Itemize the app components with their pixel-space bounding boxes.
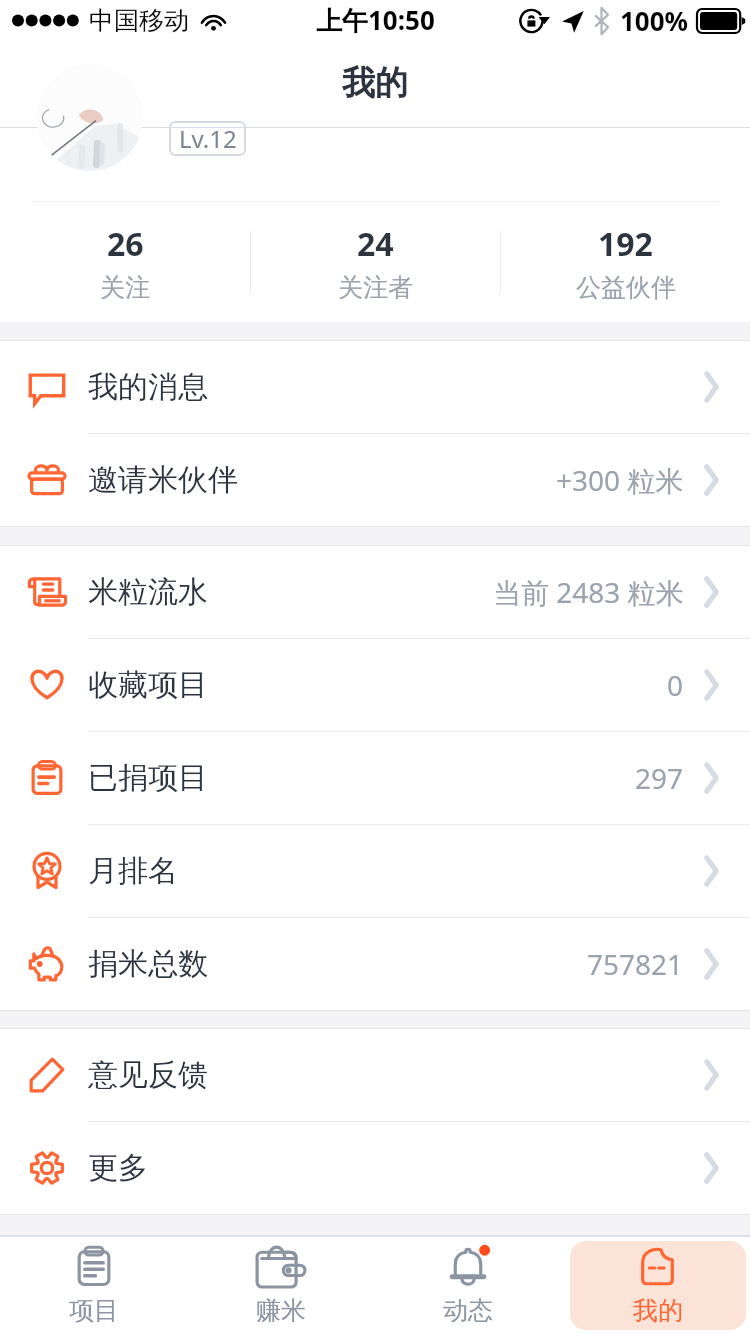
button[interactable]: 26 <box>0 217 250 307</box>
staticText: 收藏项目 <box>88 666 208 704</box>
button[interactable]: 192 <box>501 217 750 307</box>
staticText: 192 <box>598 222 653 266</box>
staticText: 项目 <box>69 1295 119 1326</box>
button[interactable]: 项目 <box>0 1241 187 1330</box>
staticText: 我的 <box>342 62 408 104</box>
staticText: 24 <box>357 222 394 266</box>
staticText: 100% <box>620 3 689 38</box>
staticText: 757821 <box>587 945 684 983</box>
staticText: 上午10:50 <box>316 2 435 38</box>
staticText: 我的消息 <box>88 368 208 406</box>
staticText: 意见反馈 <box>88 1056 208 1094</box>
button[interactable]: 更多 <box>0 1122 750 1214</box>
staticText: 赚米 <box>256 1295 306 1326</box>
button[interactable]: 赚米 <box>187 1241 374 1330</box>
staticText: 关注者 <box>338 272 413 303</box>
staticText: 当前 2483 粒米 <box>493 573 684 611</box>
staticText: Lv.12 <box>179 122 237 155</box>
staticText: 26 <box>107 222 144 266</box>
button[interactable]: 米粒流水 <box>0 546 750 638</box>
button[interactable]: 收藏项目 <box>0 639 750 731</box>
staticText: 更多 <box>88 1149 148 1187</box>
staticText: 公益伙伴 <box>576 272 676 303</box>
staticText: 米粒流水 <box>88 573 208 611</box>
staticText: 0 <box>667 666 684 704</box>
button[interactable]: 捐米总数 <box>0 918 750 1010</box>
button[interactable]: 邀请米伙伴 <box>0 434 750 526</box>
staticText: 我的 <box>633 1295 683 1326</box>
staticText: 捐米总数 <box>88 945 208 983</box>
button[interactable]: 月排名 <box>0 825 750 917</box>
staticText: +300 粒米 <box>556 461 684 499</box>
button[interactable]: 动态 <box>374 1241 562 1330</box>
button[interactable]: 我的消息 <box>0 341 750 433</box>
staticText: 中国移动 <box>89 5 189 36</box>
staticText: 邀请米伙伴 <box>88 461 238 499</box>
button[interactable]: 我的 <box>570 1241 746 1330</box>
staticText: 月排名 <box>88 852 178 890</box>
staticText: 已捐项目 <box>88 759 208 797</box>
staticText: 297 <box>635 759 684 797</box>
button[interactable]: 24 <box>251 217 500 307</box>
staticText: 动态 <box>443 1295 493 1326</box>
staticText: 关注 <box>100 272 150 303</box>
button[interactable]: 已捐项目 <box>0 732 750 824</box>
button[interactable]: 意见反馈 <box>0 1029 750 1121</box>
